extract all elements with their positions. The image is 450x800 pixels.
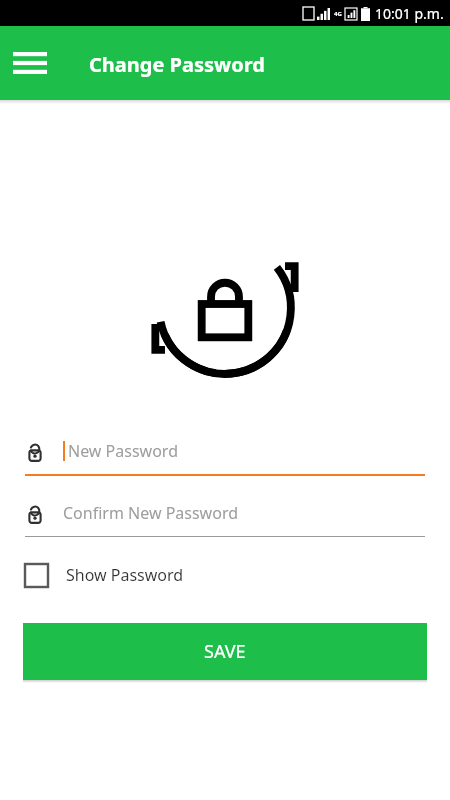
staticText: Change Password [89,51,265,78]
button[interactable]: Show Password [25,555,184,595]
staticText: Show Password [66,564,184,586]
staticText: Confirm New Password [63,502,239,524]
button[interactable]: Open navigation menu [8,41,52,85]
staticText: New Password [68,440,178,462]
staticText: 10:01 p.m. [375,4,444,23]
staticText: SAVE [204,639,246,664]
staticText: 4G [334,10,342,18]
button[interactable]: New Password [25,434,425,468]
button[interactable]: SAVE [23,623,427,680]
button[interactable]: Confirm New Password [25,496,425,530]
